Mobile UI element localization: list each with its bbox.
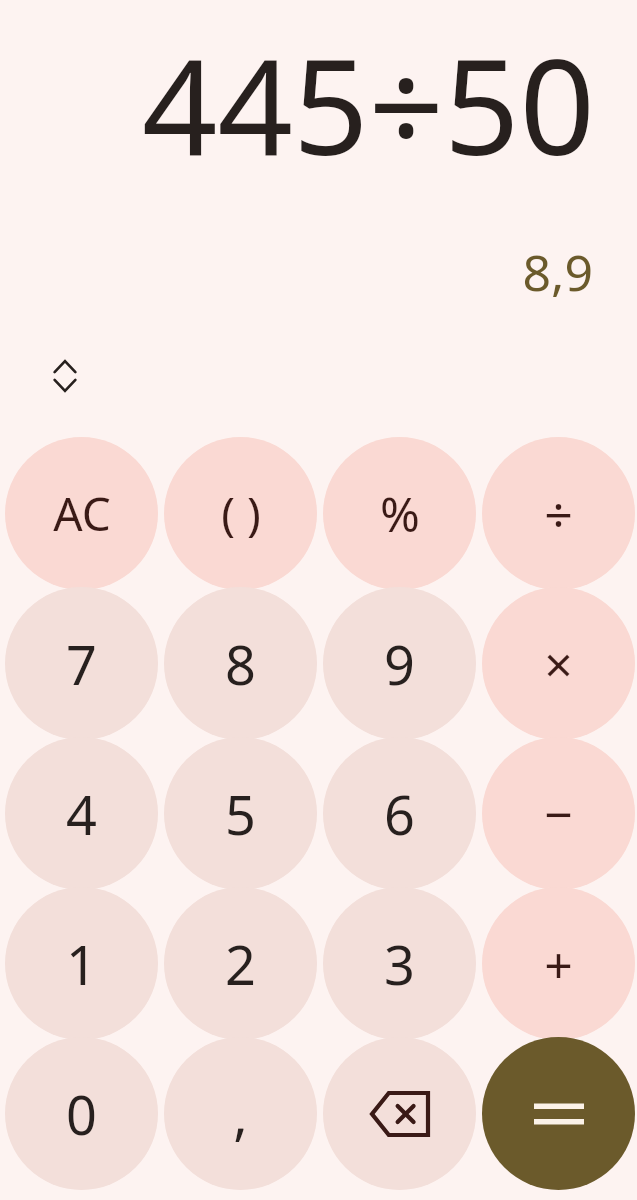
button[interactable]: Backspace [323, 1037, 476, 1190]
button[interactable]: Expand history [41, 348, 89, 404]
staticText: − [544, 780, 573, 848]
button[interactable]: 8 [164, 587, 317, 740]
staticText: % [380, 481, 420, 546]
button[interactable]: 4 [5, 737, 158, 890]
staticText: 2 [225, 927, 256, 1001]
button[interactable]: + [482, 887, 635, 1040]
button[interactable]: % [323, 437, 476, 590]
button[interactable]: Equals [482, 1037, 635, 1190]
staticText: 8 [225, 627, 256, 701]
staticText: 9 [384, 627, 415, 701]
button[interactable]: 0 [5, 1037, 158, 1190]
button[interactable]: 3 [323, 887, 476, 1040]
staticText: 445÷50 [0, 14, 595, 194]
staticText: ÷ [544, 480, 573, 548]
staticText: 5 [225, 777, 256, 851]
button[interactable]: 2 [164, 887, 317, 1040]
button[interactable]: ÷ [482, 437, 635, 590]
staticText: ( ) [221, 482, 261, 545]
staticText: 4 [66, 777, 97, 851]
staticText: + [544, 930, 573, 998]
button[interactable]: 1 [5, 887, 158, 1040]
staticText: × [544, 630, 573, 698]
button[interactable]: − [482, 737, 635, 890]
button[interactable]: 6 [323, 737, 476, 890]
button[interactable]: AC [5, 437, 158, 590]
staticText: 3 [384, 927, 415, 1001]
button[interactable]: 5 [164, 737, 317, 890]
staticText: 6 [384, 777, 415, 851]
button[interactable]: × [482, 587, 635, 740]
staticText: 7 [66, 627, 97, 701]
staticText: 8,9 [0, 238, 593, 306]
button[interactable]: , [164, 1037, 317, 1190]
staticText: 0 [66, 1077, 97, 1151]
button[interactable]: ( ) [164, 437, 317, 590]
staticText: AC [53, 482, 111, 545]
button[interactable]: 9 [323, 587, 476, 740]
staticText: 1 [66, 927, 97, 1001]
button[interactable]: 7 [5, 587, 158, 740]
staticText: , [233, 1077, 248, 1151]
